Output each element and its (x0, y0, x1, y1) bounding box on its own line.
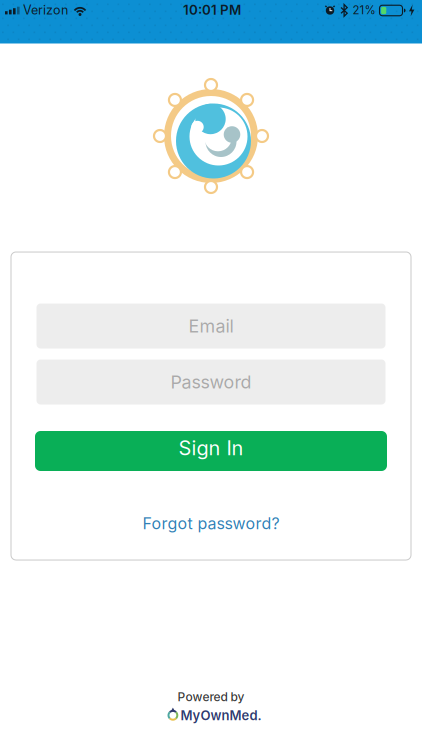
staticText: Password (170, 371, 251, 393)
staticText: 10:01 PM (183, 2, 241, 18)
button[interactable]: Sign In (35, 431, 387, 471)
button[interactable]: Password (36, 359, 385, 404)
staticText: 21% (352, 3, 375, 17)
staticText: Forgot password? (142, 514, 279, 533)
staticText: MyOwnMed. (180, 708, 261, 723)
staticText: Sign In (178, 436, 243, 460)
button[interactable]: Email (36, 303, 385, 348)
staticText: Email (188, 315, 233, 337)
staticText: Powered by (177, 690, 244, 704)
staticText: Verizon (23, 2, 68, 18)
button[interactable]: Forgot password? (142, 514, 279, 533)
